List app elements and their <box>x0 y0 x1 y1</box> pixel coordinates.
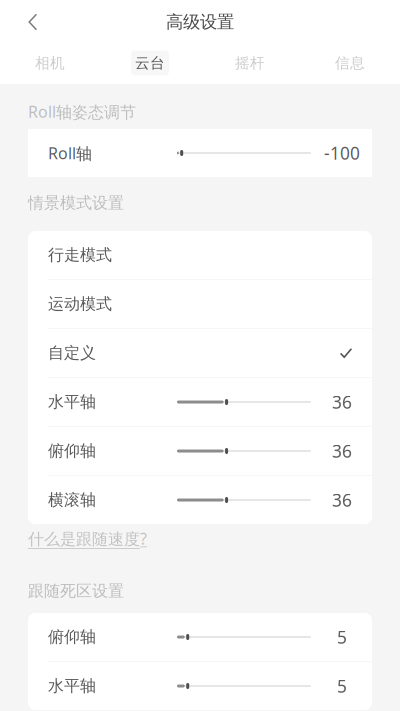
staticText: 相机 <box>35 54 65 72</box>
button[interactable]: 摇杆 <box>200 43 300 83</box>
staticText: 横滚轴 <box>48 490 96 510</box>
staticText: 俯仰轴 <box>48 441 96 461</box>
staticText: Roll轴 <box>48 142 92 164</box>
button[interactable]: 行走模式 <box>28 231 372 279</box>
staticText: 跟随死区设置 <box>28 581 124 601</box>
staticText: 水平轴 <box>48 676 96 696</box>
staticText: 摇杆 <box>235 54 265 72</box>
staticText: 36 <box>332 488 352 511</box>
staticText: 俯仰轴 <box>48 627 96 647</box>
button[interactable]: 相机 <box>0 43 100 83</box>
staticText: 运动模式 <box>48 294 112 314</box>
button[interactable]: 俯仰轴 <box>28 613 372 661</box>
staticText: Roll轴姿态调节 <box>28 101 136 122</box>
staticText: 情景模式设置 <box>28 193 124 213</box>
button[interactable]: 运动模式 <box>28 280 372 328</box>
button[interactable]: 横滚轴 <box>28 476 372 524</box>
button[interactable]: 什么是跟随速度? <box>28 528 147 549</box>
button[interactable]: 云台 <box>100 43 200 83</box>
staticText: 36 <box>332 439 352 462</box>
staticText: 5 <box>337 674 347 697</box>
button[interactable]: 水平轴 <box>28 662 372 710</box>
staticText: 什么是跟随速度? <box>28 528 147 549</box>
staticText: 5 <box>337 625 347 648</box>
button[interactable]: 水平轴 <box>28 378 372 426</box>
staticText: -100 <box>324 141 360 164</box>
staticText: 行走模式 <box>48 245 112 265</box>
button[interactable]: 信息 <box>300 43 400 83</box>
button[interactable]: Back <box>16 5 50 39</box>
staticText: 高级设置 <box>166 11 234 33</box>
staticText: 自定义 <box>48 343 96 363</box>
staticText: 云台 <box>135 54 165 72</box>
button[interactable]: 自定义 <box>28 329 372 377</box>
staticText: 水平轴 <box>48 392 96 412</box>
staticText: 36 <box>332 390 352 413</box>
staticText: 信息 <box>335 54 365 72</box>
button[interactable]: Roll轴 <box>28 129 372 177</box>
button[interactable]: 俯仰轴 <box>28 427 372 475</box>
